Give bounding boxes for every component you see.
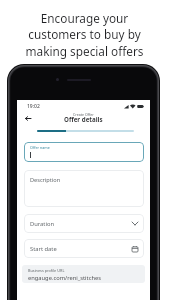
staticText: Business profile URL: [28, 268, 65, 273]
staticText: Offer details: [64, 115, 103, 123]
button[interactable]: Start date: [24, 239, 144, 258]
staticText: Encourage your customers to buy by makin…: [25, 10, 144, 59]
button[interactable]: Back: [22, 112, 34, 124]
staticText: Duration: [30, 220, 55, 228]
button[interactable]: Offer name: [24, 142, 144, 162]
button[interactable]: Business profile URL: [22, 265, 145, 283]
staticText: Description: [30, 176, 61, 184]
button[interactable]: Duration: [24, 214, 144, 233]
staticText: Start date: [30, 245, 57, 253]
staticText: Create Offer: [73, 112, 94, 117]
staticText: Offer name: [30, 145, 50, 150]
staticText: 19:02: [27, 103, 40, 110]
staticText: engauge.com/reni_stitches: [28, 274, 101, 282]
button[interactable]: Description: [24, 170, 144, 207]
